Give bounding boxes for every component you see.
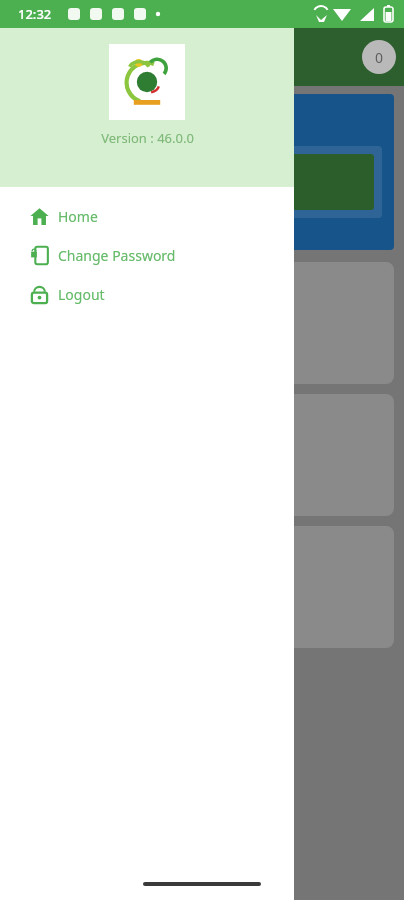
button[interactable] [30, 154, 374, 210]
staticText: Home [58, 207, 98, 226]
staticText: Logout [58, 285, 105, 304]
button[interactable]: Home [0, 197, 294, 236]
button[interactable]: Land Preparation [10, 262, 394, 384]
button[interactable]: 0 [362, 40, 396, 74]
staticText: Change Password [58, 246, 176, 265]
staticText: 0 [375, 48, 384, 67]
staticText: Thursday, 2022 [24, 108, 132, 128]
button[interactable]: Sorting [10, 526, 394, 648]
button[interactable]: Logout [0, 275, 294, 314]
button[interactable]: Thursday, 2022 [10, 94, 394, 250]
staticText: Version : 46.0.0 [101, 129, 194, 147]
button[interactable]: Change Password [0, 236, 294, 275]
button[interactable]: Scouting [10, 394, 394, 516]
staticText: 12:32 [18, 5, 52, 23]
